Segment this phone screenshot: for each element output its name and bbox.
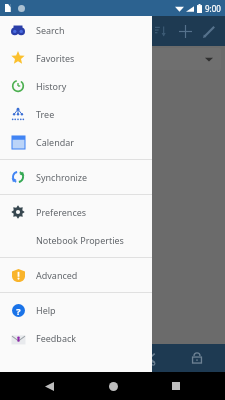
staticText: Synchronize: [36, 171, 88, 183]
staticText: Feedback: [36, 332, 77, 344]
button[interactable]: Advanced: [0, 261, 152, 289]
staticText: Favorites: [36, 52, 75, 64]
button[interactable]: Tree: [0, 100, 152, 128]
button[interactable]: Home: [99, 372, 127, 400]
button[interactable]: Favorites: [0, 44, 152, 72]
button[interactable]: Cut: [135, 344, 163, 372]
button[interactable]: Search: [0, 16, 152, 44]
button[interactable]: Back: [35, 372, 63, 400]
staticText: Calendar: [36, 136, 74, 148]
staticText: Tree: [36, 108, 55, 120]
button[interactable]: Lock: [183, 344, 211, 372]
staticText: ?: [16, 305, 21, 317]
staticText: Search: [36, 24, 65, 36]
button[interactable]: Recents: [162, 372, 190, 400]
button[interactable]: Sort: [149, 19, 173, 43]
button[interactable]: History: [0, 72, 152, 100]
button[interactable]: Edit: [197, 19, 221, 43]
staticText: 9:00: [205, 3, 221, 14]
button[interactable]: ?: [0, 296, 152, 324]
button[interactable]: Calendar: [0, 128, 152, 156]
staticText: Preferences: [36, 206, 87, 218]
staticText: Notebook Properties: [36, 234, 124, 246]
button[interactable]: Preferences: [0, 198, 152, 226]
button[interactable]: Synchronize: [0, 163, 152, 191]
button[interactable]: Notebook Properties: [0, 226, 152, 254]
button[interactable]: [4, 48, 221, 70]
button[interactable]: Add: [173, 19, 197, 43]
staticText: Advanced: [36, 269, 78, 281]
button[interactable]: Feedback: [0, 324, 152, 352]
staticText: History: [36, 80, 67, 92]
staticText: Help: [36, 304, 56, 316]
